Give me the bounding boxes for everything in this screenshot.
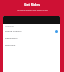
button[interactable]: Ride time [3,42,60,49]
button[interactable] [3,16,60,24]
staticText: Choose where you want to go [17,9,48,12]
staticText: Ride time [5,44,16,47]
button[interactable]: Destination [3,35,60,42]
staticText: Where to? [5,25,14,28]
staticText: Destination [5,37,18,40]
button[interactable]: Pickup location [3,28,60,35]
staticText: Pickup location [5,30,22,33]
staticText: Get Rides [24,2,40,7]
